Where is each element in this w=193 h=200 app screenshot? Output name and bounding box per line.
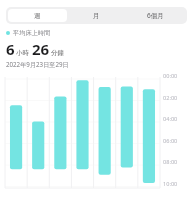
staticText: 10:00 — [163, 180, 178, 188]
button[interactable]: 週 — [8, 9, 67, 22]
staticText: 月 — [93, 12, 100, 20]
staticText: 04:00 — [163, 115, 178, 123]
staticText: 6個月 — [147, 11, 164, 20]
staticText: 週 — [34, 12, 41, 20]
staticText: 2022年9月23日至29日 — [6, 60, 69, 68]
staticText: 分鐘 — [51, 49, 64, 57]
button[interactable]: 6個月 — [126, 9, 185, 22]
staticText: 6 — [6, 39, 15, 59]
staticText: 08:00 — [163, 158, 178, 166]
button[interactable]: 月 — [67, 9, 126, 22]
staticText: 02:00 — [163, 94, 178, 102]
staticText: 26 — [32, 39, 50, 59]
staticText: 小時 — [16, 49, 29, 57]
staticText: 平均床上時間 — [13, 29, 51, 37]
staticText: 00:00 — [163, 72, 178, 80]
staticText: 06:00 — [163, 137, 178, 145]
